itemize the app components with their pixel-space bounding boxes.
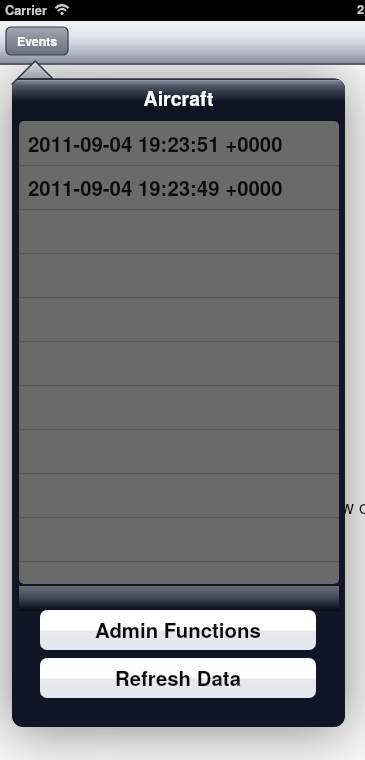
staticText: Carrier [5,1,47,19]
other: Wi-Fi signal strength [50,0,74,20]
button[interactable]: Admin Functions [40,610,316,650]
staticText: Events [17,32,58,50]
staticText: 2 [357,0,365,18]
button[interactable]: Back to Events [6,27,68,55]
staticText: w c [341,493,365,519]
button[interactable]: Refresh Data [40,658,316,698]
button[interactable]: 2011-09-04 19:23:51 +0000 [19,121,339,165]
staticText: 2011-09-04 19:23:49 +0000 [28,173,283,202]
button[interactable] [19,561,339,584]
staticText: Admin Functions [95,615,261,644]
staticText: 2011-09-04 19:23:51 +0000 [28,129,283,158]
staticText: Refresh Data [115,663,241,692]
staticText: Aircraft [12,84,345,112]
button[interactable]: 2011-09-04 19:23:49 +0000 [19,165,339,209]
